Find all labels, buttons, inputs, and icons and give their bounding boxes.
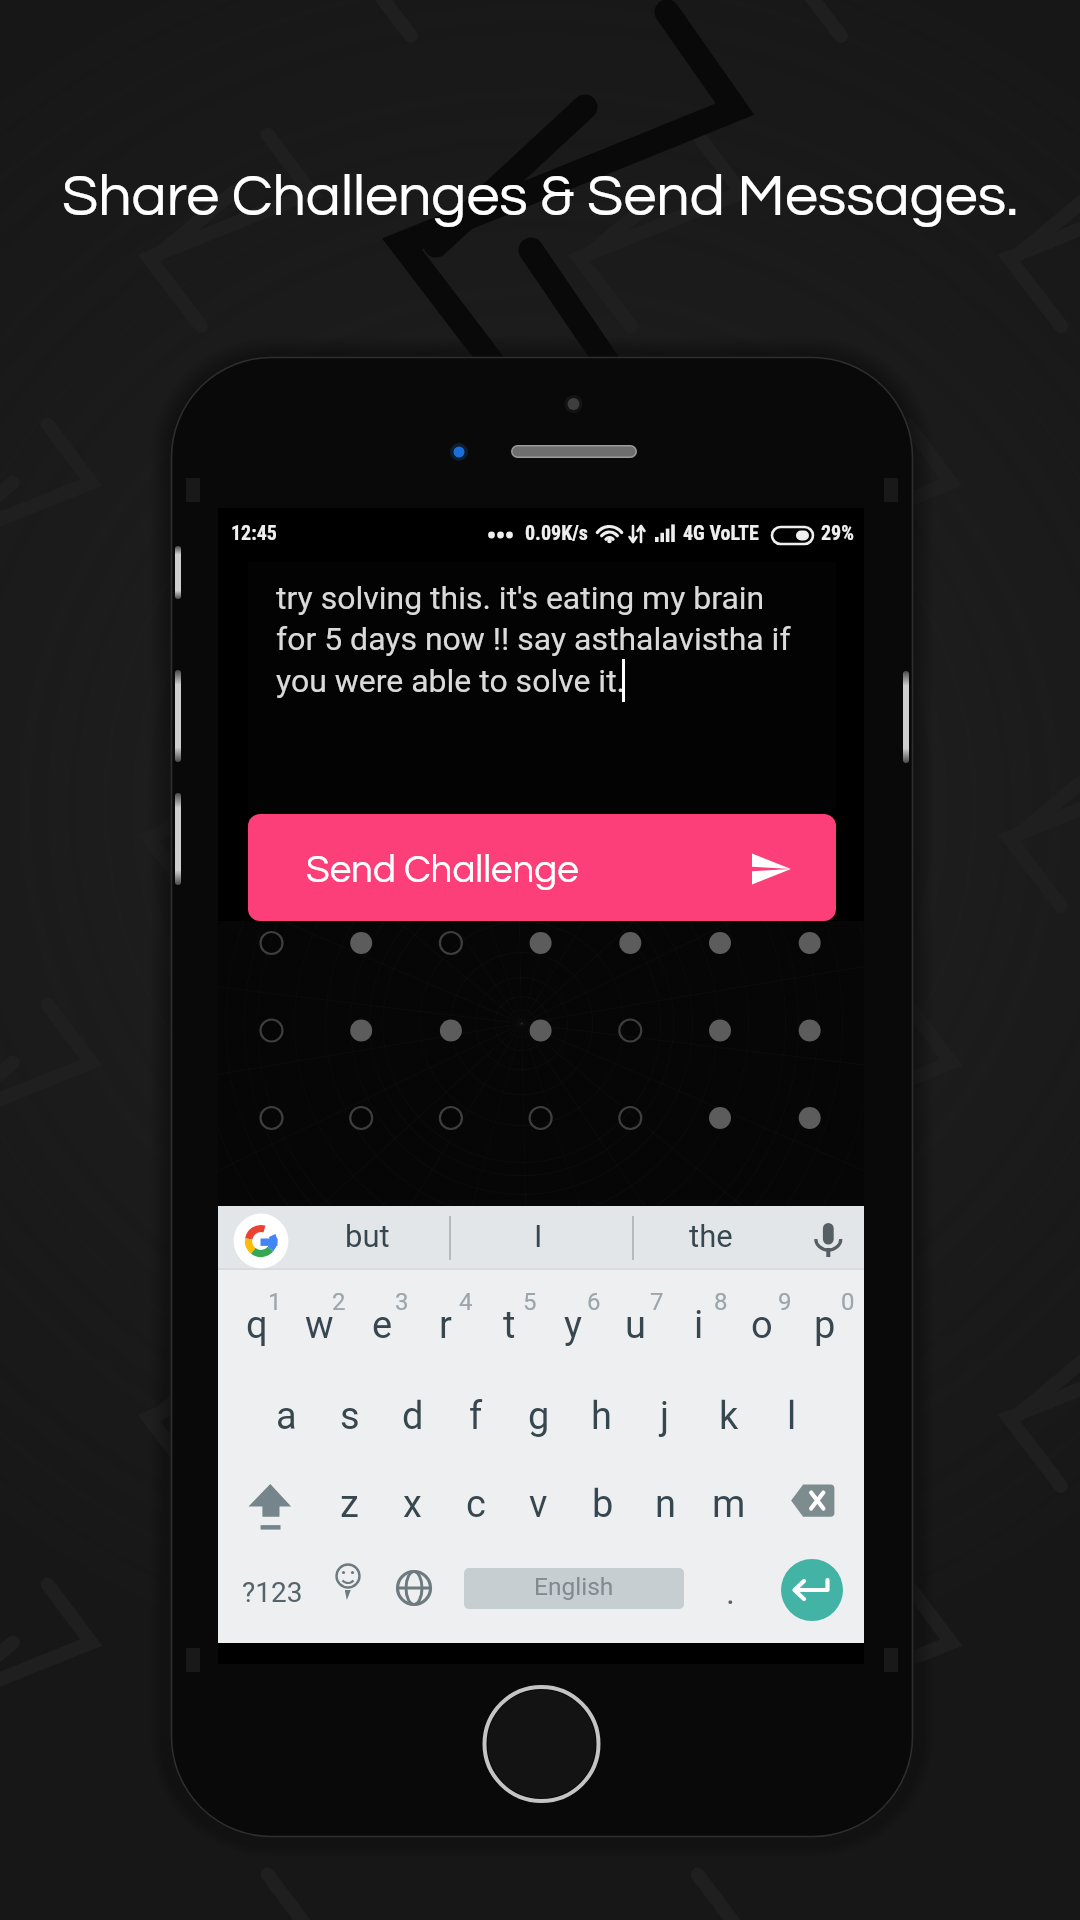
staticText: x xyxy=(403,1482,422,1527)
button[interactable]: a xyxy=(255,1377,318,1465)
button[interactable]: h xyxy=(570,1377,633,1465)
button[interactable]: r xyxy=(414,1286,477,1374)
staticText: o xyxy=(751,1303,773,1348)
button[interactable]: n xyxy=(634,1465,697,1553)
staticText: r xyxy=(439,1303,452,1348)
staticText: 12:45 xyxy=(231,521,277,544)
staticText: d xyxy=(402,1394,424,1439)
staticText: b xyxy=(592,1482,614,1527)
button[interactable]: Change language xyxy=(386,1556,444,1636)
staticText: try solving this. it's eating my brain f… xyxy=(276,579,791,700)
button[interactable]: try solving this. it's eating my brain f… xyxy=(248,562,836,812)
staticText: . xyxy=(726,1572,735,1612)
staticText: h xyxy=(591,1394,612,1439)
button[interactable]: y xyxy=(541,1286,604,1374)
button[interactable]: c xyxy=(444,1465,507,1553)
staticText: s xyxy=(340,1394,360,1439)
staticText: 0.09K/s xyxy=(525,521,588,544)
staticText: but xyxy=(345,1218,390,1254)
button[interactable]: I xyxy=(478,1206,598,1270)
button[interactable]: ?123 xyxy=(236,1556,308,1636)
button[interactable]: English xyxy=(464,1568,684,1609)
button[interactable]: k xyxy=(697,1377,760,1465)
button[interactable]: . xyxy=(702,1556,758,1636)
button[interactable]: i xyxy=(667,1286,730,1374)
staticText: Send Challenge xyxy=(306,850,579,890)
staticText: p xyxy=(814,1303,836,1348)
staticText: j xyxy=(660,1394,670,1439)
staticText: 29% xyxy=(821,521,855,544)
staticText: m xyxy=(712,1482,746,1527)
button[interactable]: p xyxy=(793,1286,856,1374)
staticText: i xyxy=(694,1303,704,1348)
staticText: q xyxy=(246,1303,268,1348)
button[interactable]: b xyxy=(571,1465,634,1553)
staticText: e xyxy=(372,1303,393,1348)
button[interactable]: e xyxy=(351,1286,414,1374)
staticText: u xyxy=(625,1303,646,1348)
staticText: 1 xyxy=(268,1288,282,1312)
staticText: I xyxy=(534,1218,543,1254)
button[interactable]: Backspace xyxy=(785,1478,841,1524)
button[interactable]: d xyxy=(381,1377,444,1465)
button[interactable]: Enter xyxy=(781,1559,843,1621)
staticText: ?123 xyxy=(242,1576,303,1609)
button[interactable]: Shift xyxy=(232,1472,310,1558)
staticText: Share Challenges & Send Messages. xyxy=(0,167,1080,228)
staticText: n xyxy=(655,1482,676,1527)
button[interactable]: j xyxy=(633,1377,696,1465)
button[interactable]: t xyxy=(478,1286,541,1374)
staticText: 9 xyxy=(778,1288,792,1312)
staticText: 5 xyxy=(523,1288,537,1312)
button[interactable]: x xyxy=(381,1465,444,1553)
staticText: l xyxy=(787,1394,797,1439)
staticText: 8 xyxy=(714,1288,728,1312)
staticText: the xyxy=(689,1218,733,1254)
button[interactable]: g xyxy=(507,1377,570,1465)
staticText: 7 xyxy=(650,1288,664,1312)
button[interactable]: Emoji xyxy=(320,1556,378,1636)
staticText: a xyxy=(276,1394,297,1439)
button[interactable]: s xyxy=(318,1377,381,1465)
staticText: w xyxy=(305,1303,334,1348)
staticText: 3 xyxy=(395,1288,409,1312)
staticText: z xyxy=(340,1482,359,1527)
button[interactable]: but xyxy=(307,1206,427,1270)
staticText: v xyxy=(529,1482,548,1527)
button[interactable]: q xyxy=(225,1286,288,1374)
staticText: 4G VoLTE xyxy=(683,521,759,544)
staticText: f xyxy=(469,1394,483,1439)
button[interactable]: the xyxy=(651,1206,771,1270)
button[interactable]: f xyxy=(444,1377,507,1465)
staticText: 4 xyxy=(459,1288,473,1312)
button[interactable]: o xyxy=(730,1286,793,1374)
staticText: c xyxy=(466,1482,486,1527)
button[interactable]: w xyxy=(288,1286,351,1374)
staticText: 2 xyxy=(332,1288,346,1312)
staticText: y xyxy=(564,1303,582,1348)
button[interactable]: l xyxy=(760,1377,823,1465)
staticText: t xyxy=(503,1303,516,1348)
button[interactable]: m xyxy=(697,1465,760,1553)
staticText: g xyxy=(528,1394,550,1439)
button[interactable]: Send Challenge xyxy=(248,814,836,921)
button[interactable]: v xyxy=(507,1465,570,1553)
button[interactable]: u xyxy=(604,1286,667,1374)
staticText: English xyxy=(534,1572,614,1601)
button[interactable]: z xyxy=(318,1465,381,1553)
staticText: 0 xyxy=(841,1288,855,1312)
staticText: k xyxy=(719,1394,739,1439)
staticText: 6 xyxy=(587,1288,601,1312)
